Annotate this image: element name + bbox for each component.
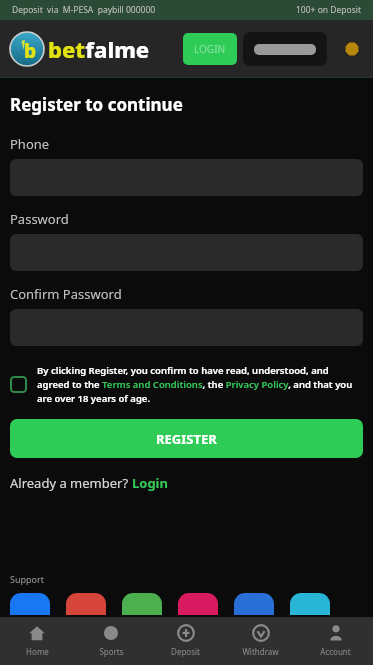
button[interactable]: Accept terms bbox=[10, 364, 363, 405]
staticText: Sports bbox=[99, 646, 124, 657]
button[interactable]: LOGIN bbox=[183, 33, 237, 65]
button[interactable]: Already a member? bbox=[10, 474, 168, 492]
button[interactable]: Deposit bbox=[148, 617, 223, 665]
staticText: Login bbox=[132, 474, 168, 492]
button[interactable]: Support channel bbox=[234, 593, 274, 615]
button[interactable]: Deposit via M-PESA paybill 000000 bbox=[0, 0, 373, 20]
button[interactable]: Support channel bbox=[122, 593, 162, 615]
staticText: Account bbox=[320, 646, 351, 657]
button[interactable]: Support channel bbox=[10, 593, 50, 615]
staticText: Deposit via M-PESA paybill 000000 bbox=[12, 4, 156, 16]
staticText: Confirm Password bbox=[10, 285, 122, 303]
staticText: Support bbox=[10, 573, 44, 585]
staticText: betfalme bbox=[48, 34, 150, 64]
button[interactable]: Sports bbox=[74, 617, 148, 665]
staticText: Password bbox=[10, 210, 69, 228]
staticText: 100+ on Deposit bbox=[296, 4, 361, 16]
staticText: Already a member? bbox=[10, 474, 132, 492]
staticText: By clicking Register, you confirm to hav… bbox=[37, 364, 363, 405]
button[interactable]: Home bbox=[0, 617, 74, 665]
other: Accept terms bbox=[10, 376, 27, 393]
staticText: b bbox=[24, 38, 37, 64]
staticText: Register to continue bbox=[10, 93, 183, 116]
button[interactable]: Account bbox=[298, 617, 373, 665]
button[interactable]: Support channel bbox=[290, 593, 330, 615]
button[interactable]: Menu bbox=[339, 36, 365, 62]
staticText: Home bbox=[26, 646, 49, 657]
staticText: Deposit bbox=[171, 646, 200, 657]
button[interactable]: Support channel bbox=[66, 593, 106, 615]
button[interactable]: REGISTER bbox=[10, 419, 363, 458]
staticText: Phone bbox=[10, 135, 50, 153]
button[interactable]: Withdraw bbox=[223, 617, 298, 665]
staticText: REGISTER bbox=[156, 430, 217, 448]
staticText: LOGIN bbox=[194, 42, 226, 56]
button[interactable]: betfalme home bbox=[10, 32, 150, 66]
staticText: Withdraw bbox=[242, 646, 279, 657]
button[interactable]: Support channel bbox=[178, 593, 218, 615]
button[interactable] bbox=[243, 32, 327, 66]
